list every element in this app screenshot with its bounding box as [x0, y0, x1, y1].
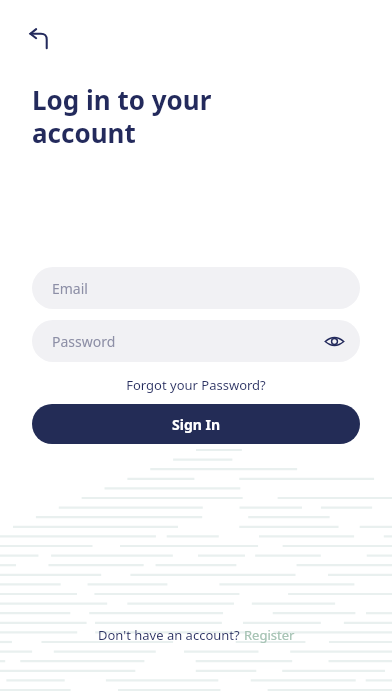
- staticText: Forgot your Password?: [126, 376, 266, 394]
- button[interactable]: Password: [32, 320, 360, 362]
- button[interactable]: Show password: [319, 326, 349, 356]
- button[interactable]: Sign In: [32, 404, 360, 444]
- staticText: Email: [52, 279, 88, 298]
- staticText: Register: [244, 626, 295, 644]
- staticText: Log in to your account: [32, 82, 212, 151]
- button[interactable]: Email: [32, 267, 360, 309]
- button[interactable]: Register: [244, 626, 295, 644]
- button[interactable]: Back: [18, 16, 62, 60]
- staticText: Don't have an account?: [98, 626, 244, 644]
- staticText: Sign In: [172, 415, 221, 434]
- staticText: Password: [52, 332, 116, 351]
- button[interactable]: Forgot your Password?: [116, 374, 276, 396]
